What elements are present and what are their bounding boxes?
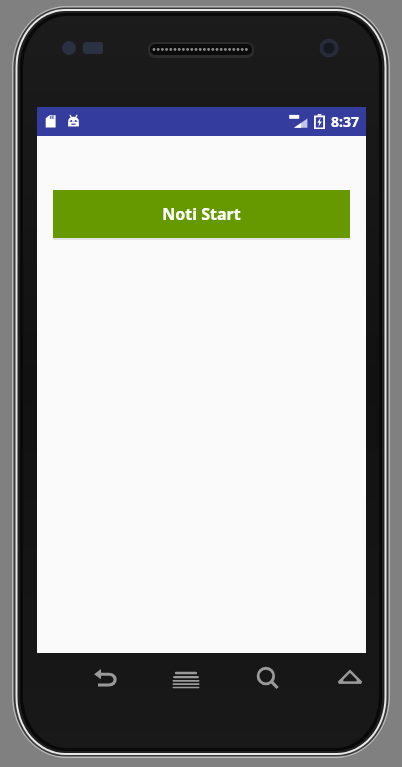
- button[interactable]: Search: [227, 653, 309, 705]
- staticText: Noti Start: [162, 203, 241, 225]
- button[interactable]: Noti Start: [53, 190, 350, 238]
- button[interactable]: Back: [62, 653, 145, 705]
- staticText: 8:37: [331, 112, 359, 131]
- button[interactable]: Menu: [145, 653, 227, 705]
- button[interactable]: Home: [309, 653, 391, 705]
